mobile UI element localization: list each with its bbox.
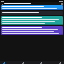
button[interactable]: Library xyxy=(39,61,43,64)
button[interactable] xyxy=(1,5,63,10)
button[interactable] xyxy=(1,16,63,25)
button[interactable] xyxy=(1,26,63,35)
button[interactable]: Profile xyxy=(58,61,62,64)
button[interactable]: Home xyxy=(2,61,6,64)
button[interactable] xyxy=(1,11,63,15)
button[interactable]: Menu xyxy=(1,3,3,5)
button[interactable]: Explore xyxy=(21,61,25,64)
